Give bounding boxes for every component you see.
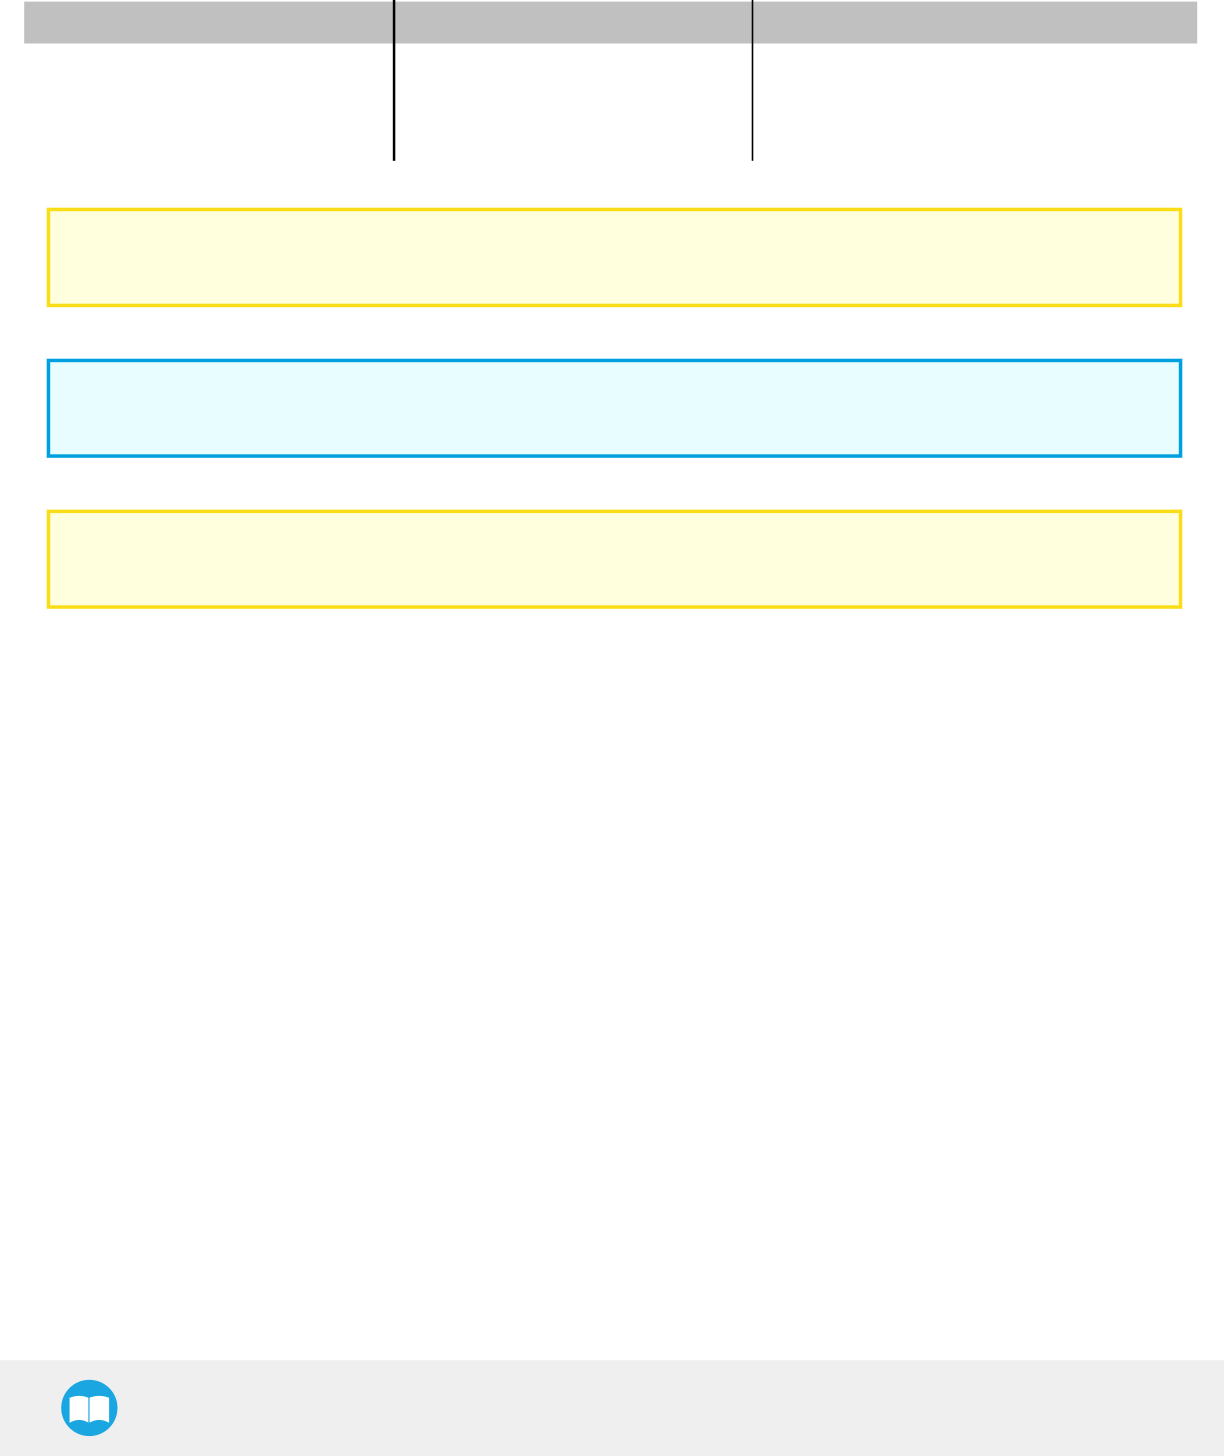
button[interactable]: Highlighted tip [47,359,1182,458]
button[interactable]: Highlighted note [47,510,1182,609]
button[interactable]: Open in Books [0,1360,117,1436]
button[interactable]: Highlighted note [47,208,1182,307]
